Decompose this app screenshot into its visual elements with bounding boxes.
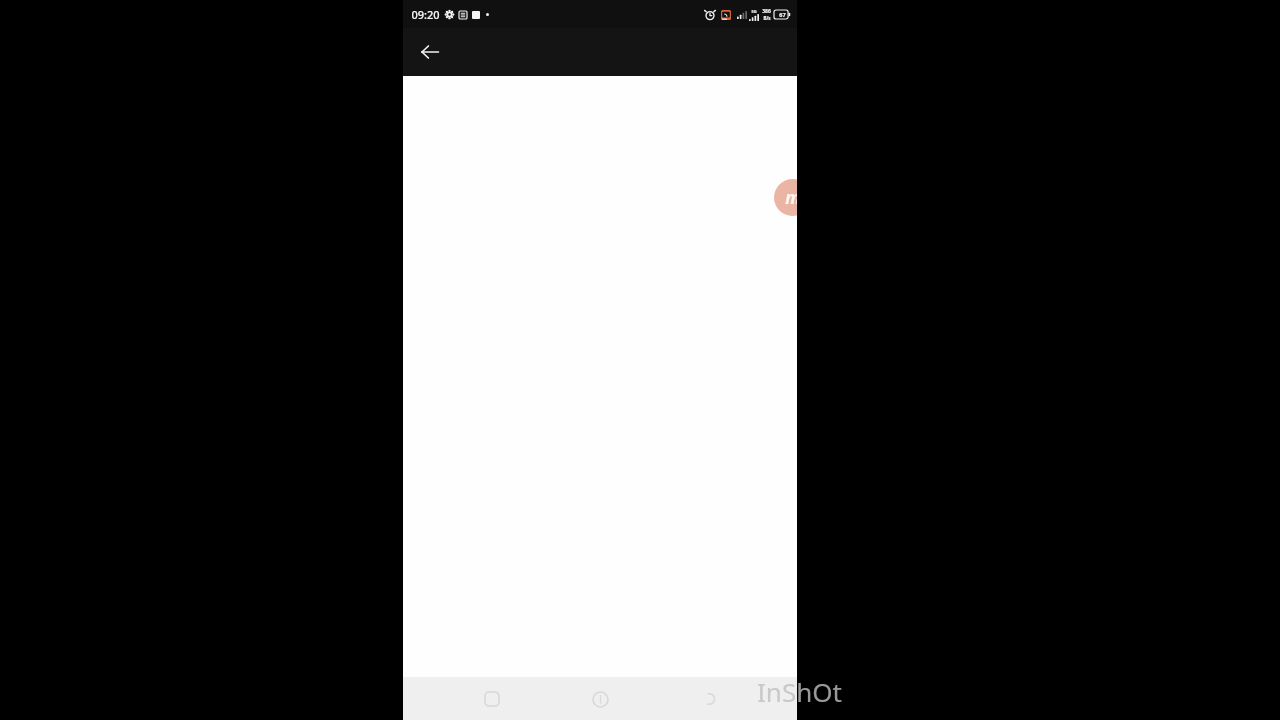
staticText: m [785, 186, 801, 209]
button[interactable]: Recents [472, 679, 512, 719]
staticText: InShOt [757, 674, 842, 709]
staticText: 67 [779, 11, 786, 18]
button[interactable]: Back [411, 33, 449, 71]
button[interactable]: Home [580, 679, 620, 719]
staticText: B/s [763, 15, 771, 21]
staticText: 5G [751, 9, 757, 14]
staticText: 386 [762, 8, 771, 15]
staticText: 09:20 [411, 7, 440, 22]
